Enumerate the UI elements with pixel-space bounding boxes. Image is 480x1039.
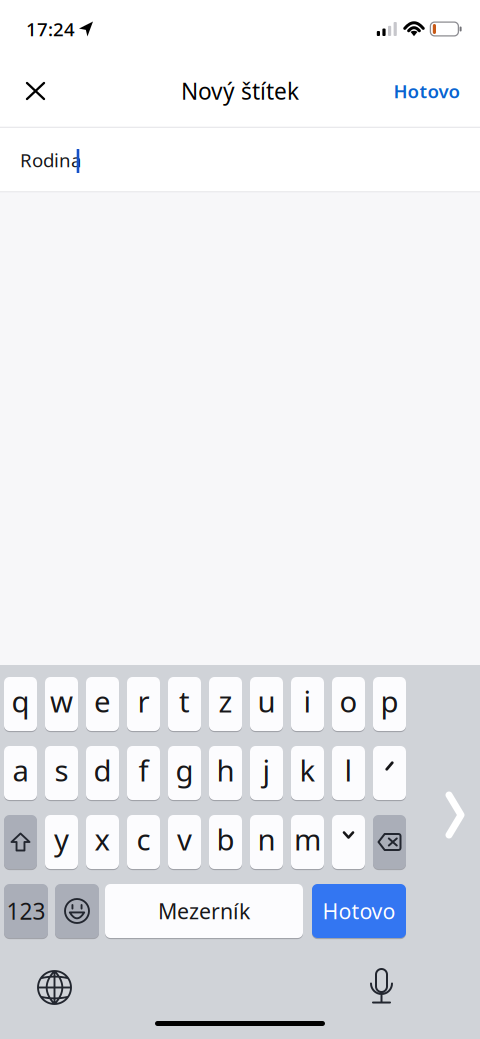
button[interactable]: Delete	[373, 815, 406, 869]
staticText: u	[257, 681, 275, 720]
staticText: e	[94, 681, 111, 720]
button[interactable]: a	[4, 746, 37, 800]
staticText: Hotovo	[393, 79, 460, 103]
staticText: f	[138, 750, 148, 789]
button[interactable]: d	[86, 746, 119, 800]
staticText: p	[380, 681, 398, 720]
button[interactable]: y	[45, 815, 78, 869]
staticText: w	[50, 681, 73, 720]
button[interactable]: l	[332, 746, 365, 800]
button[interactable]: c	[127, 815, 160, 869]
staticText: d	[93, 750, 111, 789]
staticText: Hotovo	[322, 897, 395, 925]
button[interactable]: Shift	[4, 815, 37, 869]
button[interactable]: q	[4, 677, 37, 731]
staticText: 123	[6, 896, 45, 926]
button[interactable]: v	[168, 815, 201, 869]
staticText: c	[136, 819, 150, 858]
staticText: n	[257, 819, 275, 858]
button[interactable]: o	[332, 677, 365, 731]
staticText: g	[175, 750, 193, 789]
staticText: m	[294, 819, 321, 858]
button[interactable]: t	[168, 677, 201, 731]
button[interactable]: f	[127, 746, 160, 800]
button[interactable]: m	[291, 815, 324, 869]
staticText: Rodina	[20, 148, 81, 172]
staticText: b	[216, 819, 234, 858]
button[interactable]: Hotovo	[381, 67, 472, 115]
button[interactable]: Close	[11, 67, 59, 115]
button[interactable]: e	[86, 677, 119, 731]
button[interactable]: 123	[4, 884, 48, 938]
button[interactable]: Emoji	[55, 884, 99, 938]
staticText: i	[303, 681, 311, 720]
staticText: Mezerník	[158, 897, 250, 925]
staticText: y	[54, 819, 69, 858]
staticText: l	[344, 750, 352, 789]
button[interactable]: i	[291, 677, 324, 731]
button[interactable]: b	[209, 815, 242, 869]
staticText: r	[137, 681, 149, 720]
button[interactable]: j	[250, 746, 283, 800]
button[interactable]: u	[250, 677, 283, 731]
staticText: Nový štítek	[181, 76, 299, 106]
staticText: s	[54, 750, 68, 789]
button[interactable]: Hotovo	[312, 884, 406, 938]
button[interactable]: r	[127, 677, 160, 731]
staticText: o	[339, 681, 357, 720]
staticText: k	[299, 750, 315, 789]
button[interactable]: Next keyboard	[28, 963, 80, 1011]
button[interactable]: Caron	[332, 815, 365, 869]
button[interactable]: Dictate	[355, 962, 407, 1010]
button[interactable]: g	[168, 746, 201, 800]
button[interactable]: h	[209, 746, 242, 800]
staticText: j	[262, 750, 270, 789]
button[interactable]: Acute accent	[373, 746, 406, 800]
button[interactable]: p	[373, 677, 406, 731]
button[interactable]: Mezerník	[105, 884, 303, 938]
button[interactable]: s	[45, 746, 78, 800]
button[interactable]: z	[209, 677, 242, 731]
button[interactable]: x	[86, 815, 119, 869]
staticText: q	[11, 681, 29, 720]
staticText: v	[177, 819, 192, 858]
button[interactable]: k	[291, 746, 324, 800]
button[interactable]: w	[45, 677, 78, 731]
staticText: z	[218, 681, 232, 720]
staticText: h	[216, 750, 234, 789]
staticText: t	[179, 681, 190, 720]
button[interactable]: n	[250, 815, 283, 869]
staticText: x	[94, 819, 110, 858]
staticText: 17:24	[26, 17, 75, 41]
staticText: a	[12, 750, 28, 789]
